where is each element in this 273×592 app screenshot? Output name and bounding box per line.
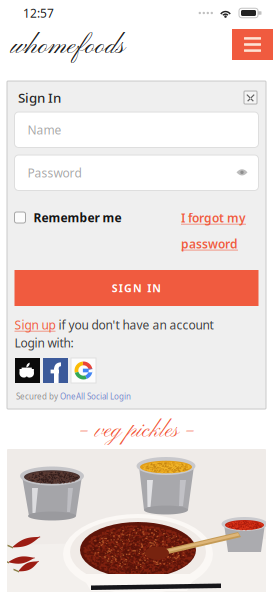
- staticText: 12:57: [23, 5, 54, 21]
- button[interactable]: Sign in with Facebook: [43, 358, 68, 383]
- staticText: Login with:: [14, 335, 73, 351]
- staticText: Remember me: [33, 209, 121, 225]
- button[interactable]: Menu: [232, 29, 273, 60]
- staticText: Password: [27, 165, 81, 181]
- button[interactable]: I forgot my: [181, 210, 251, 252]
- staticText: – veg pickles –: [78, 417, 195, 445]
- staticText: Secured by: [16, 391, 60, 402]
- staticText: whomefoods: [11, 30, 125, 63]
- staticText: OneAll Social Login: [60, 391, 131, 402]
- button[interactable]: Remember me: [14, 211, 121, 224]
- staticText: password: [181, 236, 238, 252]
- staticText: Sign up: [14, 317, 55, 333]
- button[interactable]: Sign in with Apple: [15, 358, 40, 383]
- staticText: if you don't have an account: [55, 317, 213, 333]
- staticText: Sign In: [18, 89, 61, 106]
- button[interactable]: SIGN IN: [14, 270, 258, 306]
- button[interactable]: Sign up: [14, 317, 55, 333]
- staticText: I forgot my: [181, 210, 246, 226]
- button[interactable]: Close: [244, 91, 257, 104]
- staticText: Name: [27, 122, 61, 138]
- button[interactable]: Sign in with Google: [71, 358, 96, 383]
- staticText: SIGN IN: [112, 281, 161, 295]
